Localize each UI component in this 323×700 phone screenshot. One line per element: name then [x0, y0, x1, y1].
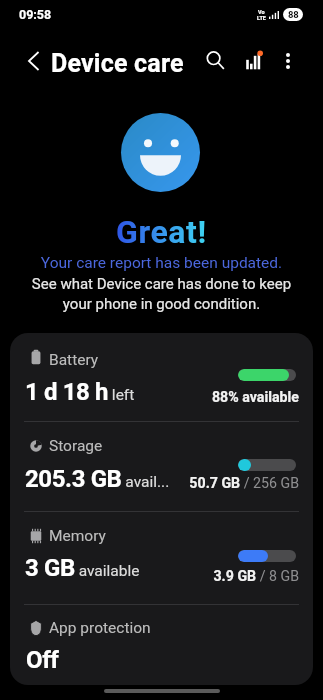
staticText: Device care	[51, 49, 184, 78]
button[interactable]: Search	[201, 46, 229, 74]
staticText: Memory	[49, 527, 106, 545]
staticText: LTE	[257, 15, 266, 21]
staticText: 3.9 GB / 8 GB	[10, 568, 299, 585]
staticText: 205.3 GB avail...	[25, 465, 170, 493]
staticText: Great!	[116, 213, 207, 251]
staticText: 88% available	[10, 389, 299, 406]
staticText: See what Device care has done to keep yo…	[0, 275, 323, 313]
staticText: Your care report has been updated.	[0, 254, 323, 272]
button[interactable]: Back	[19, 46, 49, 76]
staticText: 09:58	[19, 7, 52, 22]
button[interactable]: Battery	[10, 333, 313, 421]
staticText: App protection	[49, 619, 151, 637]
staticText: Vo	[258, 9, 265, 15]
staticText: Off	[26, 646, 59, 674]
button[interactable]: App protection	[10, 605, 313, 685]
button[interactable]: Storage	[10, 422, 313, 511]
staticText: Storage	[49, 437, 103, 455]
staticText: 88	[288, 9, 299, 20]
staticText: Battery	[49, 351, 99, 369]
button[interactable]: Usage statistics	[241, 49, 269, 77]
button[interactable]: Memory	[10, 512, 313, 604]
staticText: 3 GB available	[25, 554, 140, 582]
button[interactable]: More options	[274, 47, 302, 75]
staticText: 1 d 18 h left	[25, 378, 135, 406]
staticText: 50.7 GB / 256 GB	[10, 475, 299, 492]
